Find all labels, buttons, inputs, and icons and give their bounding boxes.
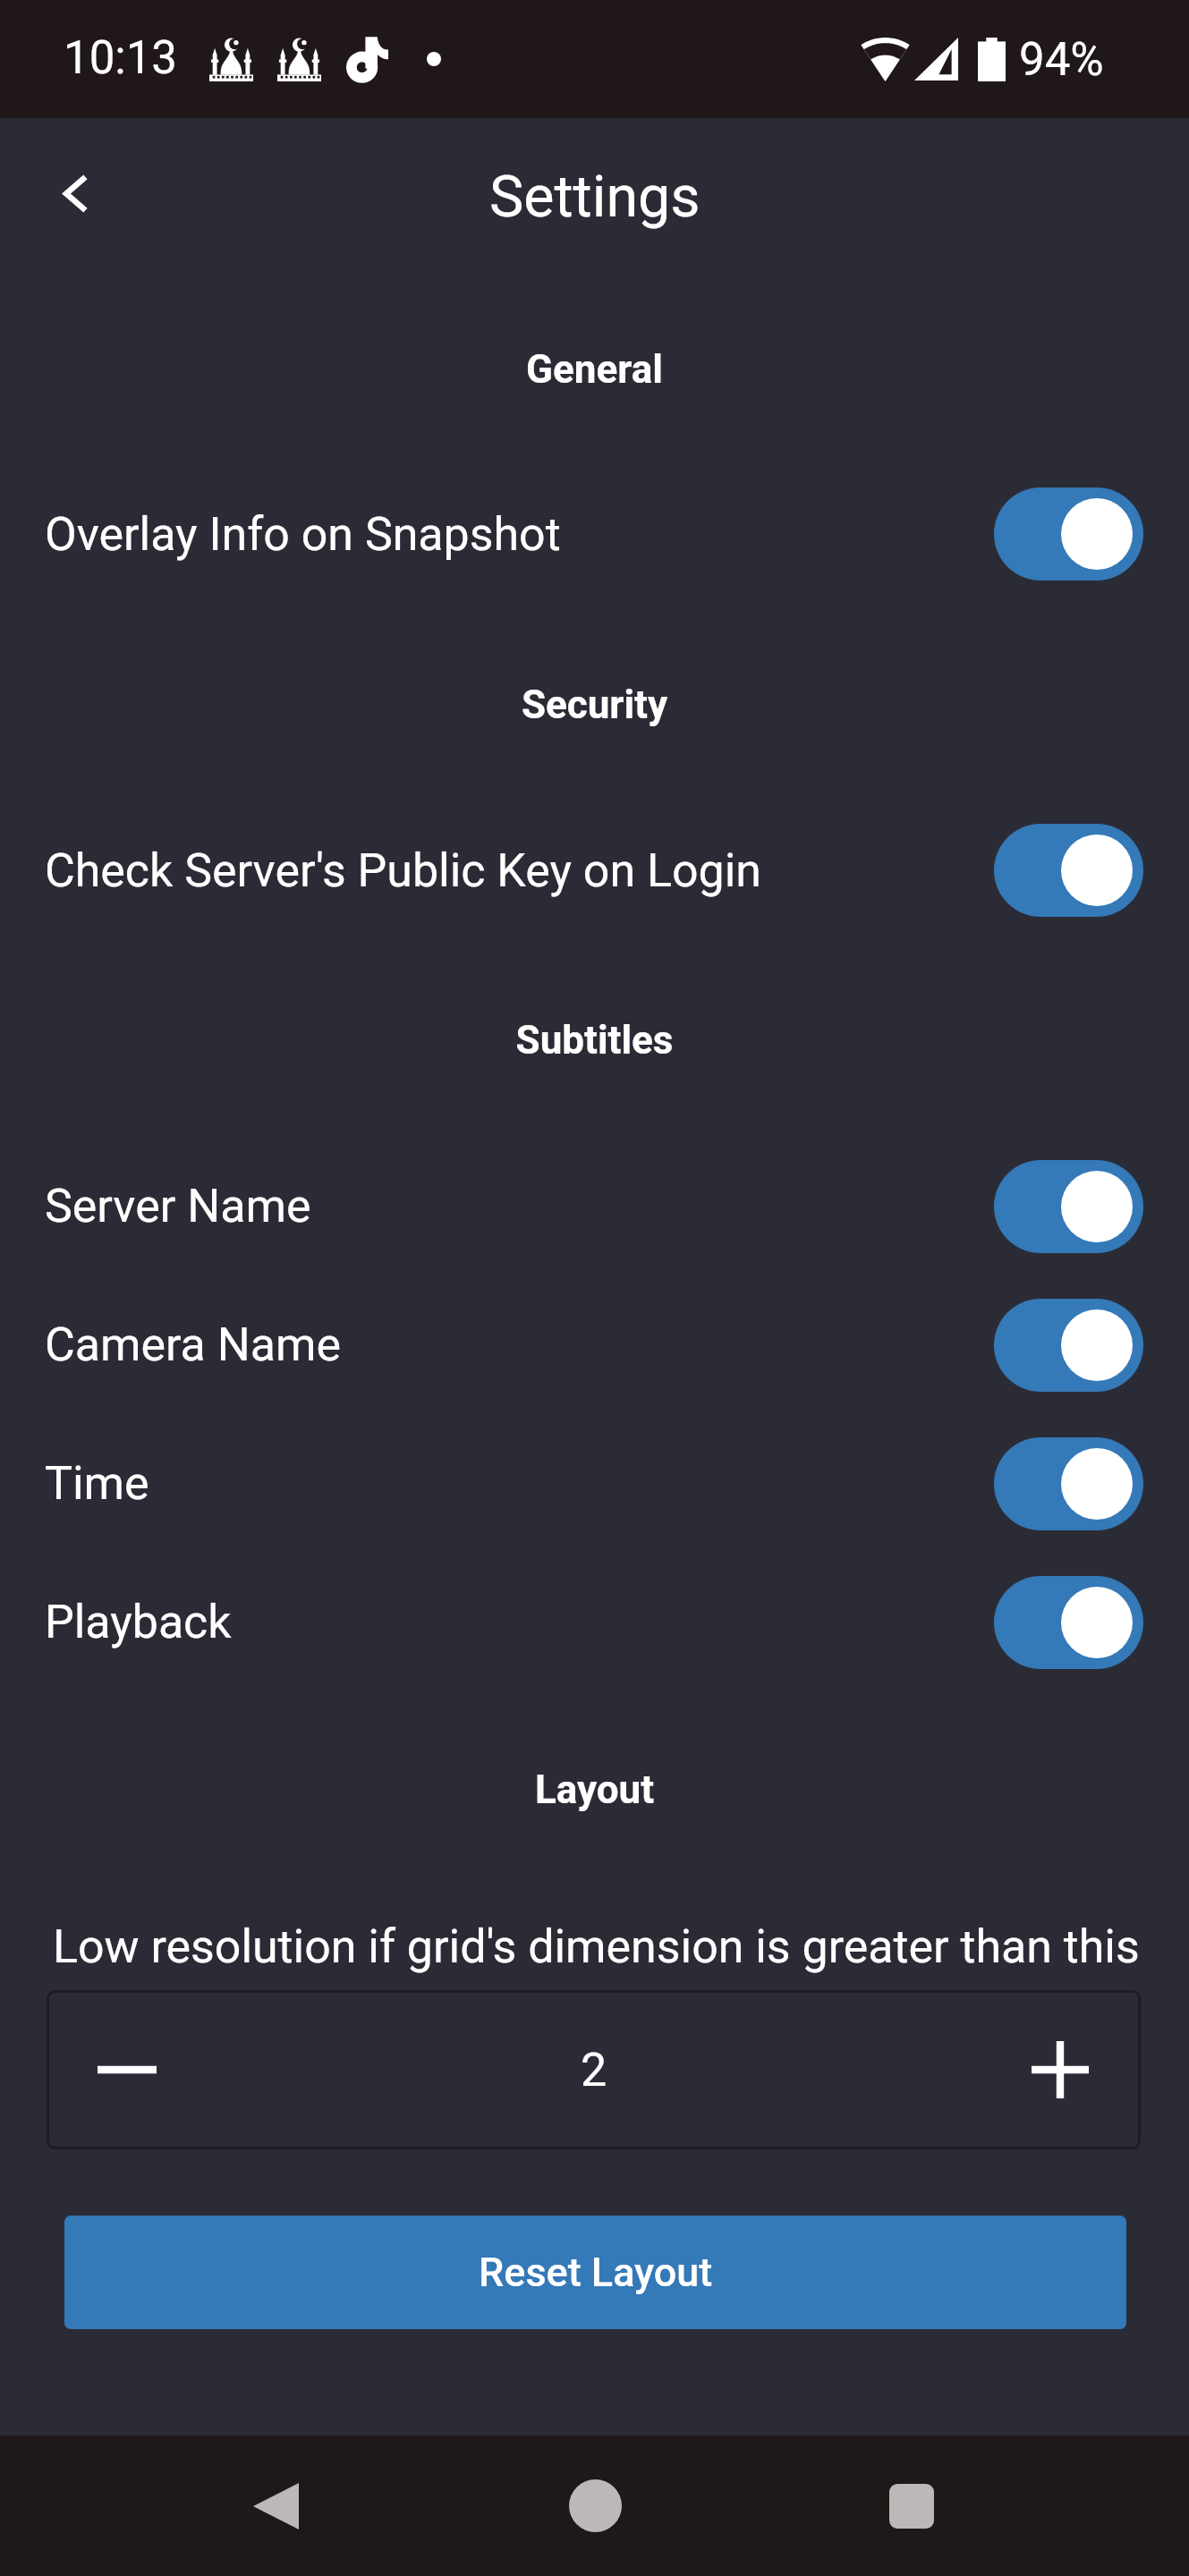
button[interactable]: Server Name (0, 1137, 1189, 1275)
button[interactable]: Overlay Info on Snapshot (994, 487, 1143, 580)
button[interactable]: Camera Name (0, 1275, 1189, 1414)
button[interactable]: Home (523, 2436, 667, 2576)
button[interactable]: Time (994, 1437, 1143, 1530)
staticText: 10:13 (64, 31, 178, 85)
button[interactable]: Reset Layout (64, 2216, 1126, 2329)
button[interactable]: Check Server's Public Key on Login (0, 808, 1189, 933)
staticText: Subtitles (0, 1017, 1189, 1063)
button[interactable]: Playback (0, 1553, 1189, 1691)
staticText: 94% (1019, 33, 1104, 87)
staticText: Settings (489, 163, 701, 231)
staticText: Layout (0, 1767, 1189, 1813)
staticText: General (0, 346, 1189, 393)
staticText: Low resolution if grid's dimension is gr… (53, 1919, 1189, 1974)
button[interactable]: Time (0, 1414, 1189, 1553)
staticText: Overlay Info on Snapshot (45, 507, 994, 562)
button[interactable]: Increase (980, 1990, 1141, 2149)
staticText: Reset Layout (479, 2249, 713, 2296)
staticText: Camera Name (45, 1318, 994, 1372)
staticText: Security (0, 682, 1189, 728)
staticText: 2 (208, 2043, 980, 2097)
button[interactable]: Recents (840, 2436, 983, 2576)
button[interactable]: Playback (994, 1576, 1143, 1669)
button[interactable]: Back (204, 2436, 347, 2576)
button[interactable]: Back (33, 154, 115, 236)
button[interactable]: Server Name (994, 1160, 1143, 1253)
button[interactable]: Camera Name (994, 1299, 1143, 1392)
button[interactable]: Decrease (47, 1990, 208, 2149)
button[interactable]: Check Server's Public Key on Login (994, 824, 1143, 917)
staticText: Playback (45, 1595, 994, 1649)
staticText: Time (45, 1456, 994, 1511)
staticText: Server Name (45, 1179, 994, 1233)
staticText: Check Server's Public Key on Login (45, 843, 994, 898)
button[interactable]: Overlay Info on Snapshot (0, 471, 1189, 597)
